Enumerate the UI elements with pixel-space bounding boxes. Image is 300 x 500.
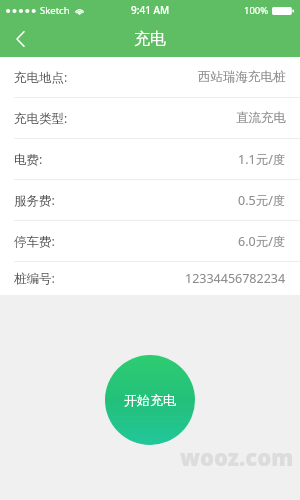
button[interactable]: 桩编号: xyxy=(0,262,300,295)
staticText: 充电类型: xyxy=(14,110,68,127)
staticText: 停车费: xyxy=(14,233,55,250)
button[interactable]: 停车费: xyxy=(0,221,300,261)
staticText: 1.1元/度 xyxy=(238,151,286,168)
button[interactable]: 服务费: xyxy=(0,180,300,220)
button[interactable]: 开始充电 xyxy=(105,355,195,445)
staticText: 0.5元/度 xyxy=(238,192,286,209)
staticText: 充电 xyxy=(134,29,166,49)
staticText: 100% xyxy=(244,4,269,17)
button[interactable]: 电费: xyxy=(0,139,300,179)
staticText: 服务费: xyxy=(14,192,55,209)
button[interactable]: 充电类型: xyxy=(0,98,300,138)
staticText: Sketch xyxy=(40,4,70,17)
staticText: 12334456782234 xyxy=(185,270,286,287)
staticText: 桩编号: xyxy=(14,270,55,287)
staticText: 6.0元/度 xyxy=(238,233,286,250)
staticText: 9:41 AM xyxy=(131,3,170,17)
staticText: 电费: xyxy=(14,151,43,168)
staticText: 开始充电 xyxy=(124,392,176,408)
staticText: 直流充电 xyxy=(236,110,286,126)
button[interactable]: Back xyxy=(0,20,40,57)
staticText: wooz.com xyxy=(180,442,294,472)
staticText: 充电地点: xyxy=(14,69,68,86)
staticText: 西站瑞海充电桩 xyxy=(198,69,286,85)
button[interactable]: 充电地点: xyxy=(0,57,300,97)
